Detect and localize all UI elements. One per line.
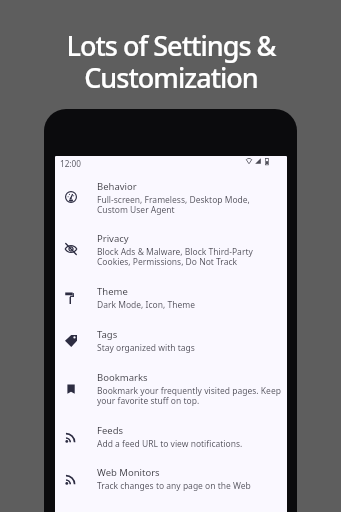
staticText: 12:00 [60, 158, 81, 169]
staticText: Theme [97, 285, 128, 298]
staticText: Stay organized with tags [97, 342, 195, 354]
staticText: Behavior [97, 180, 137, 193]
staticText: Dark Mode, Icon, Theme [97, 299, 195, 311]
staticText: Bookmark your frequently visited pages. … [97, 385, 281, 407]
button[interactable]: Bookmarks [55, 367, 287, 410]
staticText: Web Monitors [97, 466, 160, 479]
staticText: Lots of Settings & Customization [66, 27, 276, 96]
button[interactable]: Web Monitors [55, 462, 287, 495]
staticText: Privacy [97, 232, 129, 245]
staticText: Block Ads & Malware, Block Third-Party C… [97, 246, 253, 268]
other: Wi-Fi, signal and battery status [246, 158, 269, 165]
button[interactable]: Privacy [55, 228, 287, 271]
button[interactable]: Tags [55, 324, 287, 357]
button[interactable]: Theme [55, 281, 287, 314]
staticText: Tags [97, 328, 118, 341]
button[interactable]: Behavior [55, 176, 287, 219]
staticText: Add a feed URL to view notifications. [97, 438, 243, 450]
staticText: Full-screen, Frameless, Desktop Mode, Cu… [97, 194, 250, 216]
staticText: Bookmarks [97, 371, 148, 384]
button[interactable]: Feeds [55, 420, 287, 453]
staticText: Feeds [97, 424, 124, 437]
staticText: Track changes to any page on the Web [97, 480, 251, 492]
